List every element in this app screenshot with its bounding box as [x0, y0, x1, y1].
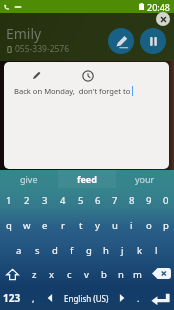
button[interactable]: o	[140, 213, 157, 238]
button[interactable]: .	[130, 286, 146, 310]
staticText: 123	[3, 291, 21, 305]
staticText: 055-339-2576	[15, 43, 70, 55]
button[interactable]: f	[63, 238, 80, 262]
button[interactable]: 4	[54, 188, 72, 213]
button[interactable]: Set reminder	[78, 66, 97, 85]
button[interactable]: 6	[89, 188, 106, 213]
button[interactable]: Next language	[114, 286, 130, 310]
button[interactable]: t	[72, 213, 89, 238]
staticText: h	[103, 244, 109, 257]
staticText: feed	[77, 173, 97, 185]
staticText: .	[137, 292, 140, 304]
button[interactable]: w	[18, 213, 36, 238]
button[interactable]: Pause	[140, 28, 166, 54]
staticText: give	[20, 173, 38, 185]
button[interactable]: n	[112, 262, 129, 286]
staticText: d	[52, 244, 58, 257]
staticText: 1	[6, 194, 12, 207]
staticText: g	[86, 244, 92, 257]
button[interactable]: u	[106, 213, 123, 238]
button[interactable]: j	[114, 238, 131, 262]
button[interactable]: Shift	[0, 262, 25, 286]
button[interactable]: y	[89, 213, 106, 238]
button[interactable]: i	[123, 213, 140, 238]
button[interactable]: 2	[18, 188, 36, 213]
button[interactable]: your	[116, 170, 174, 188]
staticText: 4	[60, 194, 66, 207]
staticText: 6	[95, 194, 101, 207]
button[interactable]: m	[129, 262, 146, 286]
button[interactable]: p	[157, 213, 174, 238]
staticText: 8	[129, 194, 135, 207]
button[interactable]: 123	[0, 286, 24, 310]
staticText: o	[146, 219, 152, 232]
staticText: b	[101, 268, 107, 281]
button[interactable]: ,	[24, 286, 42, 310]
staticText: u	[112, 219, 118, 232]
button[interactable]: v	[78, 262, 95, 286]
button[interactable]: z	[25, 262, 43, 286]
staticText: English (US)	[64, 293, 109, 304]
staticText: c	[67, 268, 72, 281]
button[interactable]: l	[148, 238, 165, 262]
staticText: a	[16, 244, 22, 257]
button[interactable]: Previous language	[42, 286, 58, 310]
button[interactable]: 7	[106, 188, 123, 213]
button[interactable]: d	[46, 238, 63, 262]
staticText: 5	[78, 194, 84, 207]
button[interactable]: 3	[36, 188, 54, 213]
staticText: j	[121, 244, 124, 257]
staticText: n	[118, 268, 124, 281]
staticText: t	[79, 219, 83, 232]
button[interactable]: c	[61, 262, 78, 286]
staticText: v	[84, 268, 89, 281]
staticText: ,	[32, 292, 35, 304]
button[interactable]: g	[80, 238, 97, 262]
button[interactable]: 1	[0, 188, 18, 213]
staticText: 2	[24, 194, 30, 207]
button[interactable]: English (US)	[58, 286, 114, 310]
staticText: 3	[42, 194, 48, 207]
button[interactable]: h	[97, 238, 114, 262]
button[interactable]: give	[0, 170, 58, 188]
staticText: Back on Monday, don't forget to	[14, 86, 131, 96]
staticText: z	[32, 268, 37, 281]
staticText: p	[163, 219, 169, 232]
button[interactable]: a	[10, 238, 28, 262]
staticText: w	[23, 219, 31, 232]
staticText: your	[135, 173, 155, 185]
staticText: 7	[112, 194, 118, 207]
button[interactable]: x	[43, 262, 61, 286]
button[interactable]: q	[0, 213, 18, 238]
staticText: s	[35, 244, 40, 257]
staticText: i	[130, 219, 133, 232]
staticText: l	[155, 244, 158, 257]
button[interactable]: 8	[123, 188, 140, 213]
staticText: q	[6, 219, 12, 232]
button[interactable]: feed	[58, 170, 116, 188]
staticText: 0	[163, 194, 169, 207]
staticText: e	[42, 219, 48, 232]
button[interactable]: Close	[156, 12, 170, 26]
button[interactable]: k	[131, 238, 148, 262]
button[interactable]: r	[54, 213, 72, 238]
staticText: 9	[146, 194, 152, 207]
staticText: r	[61, 219, 65, 232]
button[interactable]: 0	[157, 188, 174, 213]
staticText: 20:48	[147, 1, 171, 13]
staticText: f	[70, 244, 74, 257]
staticText: y	[95, 219, 100, 232]
button[interactable]: Backspace	[146, 262, 174, 286]
staticText: k	[137, 244, 143, 257]
button[interactable]: Enter	[146, 286, 174, 310]
button[interactable]: 5	[72, 188, 89, 213]
button[interactable]: e	[36, 213, 54, 238]
button[interactable]: 9	[140, 188, 157, 213]
staticText: m	[133, 268, 142, 281]
button[interactable]: b	[95, 262, 112, 286]
button[interactable]: Edit note	[27, 66, 46, 85]
staticText: x	[49, 268, 55, 281]
button[interactable]: s	[28, 238, 46, 262]
staticText: Emily	[6, 24, 42, 43]
button[interactable]: Edit	[108, 28, 134, 54]
